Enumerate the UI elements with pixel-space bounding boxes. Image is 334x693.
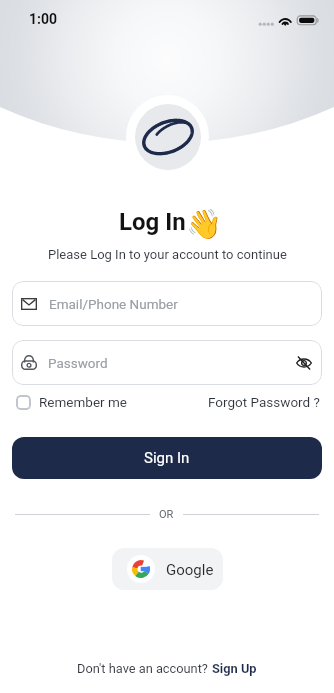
staticText: Please Log In to your account to continu… [48, 247, 287, 262]
button[interactable]: Remember me [16, 394, 127, 410]
staticText: 👋 [186, 207, 223, 241]
button[interactable]: Password [12, 340, 322, 385]
staticText: Don't have an account? [77, 661, 212, 676]
staticText: Log In [119, 208, 186, 236]
staticText: Password [48, 355, 108, 371]
staticText: Sign In [144, 449, 190, 467]
button[interactable]: Show password [296, 356, 312, 370]
staticText: 1:00 [29, 11, 58, 27]
button[interactable]: Forgot Password ? [208, 394, 320, 410]
staticText: OR [159, 508, 174, 521]
staticText: Sign Up [212, 661, 257, 676]
staticText: Google [166, 561, 214, 579]
button[interactable]: Sign In [12, 437, 322, 479]
staticText: Email/Phone Number [49, 296, 178, 312]
button[interactable]: Google [112, 548, 223, 590]
staticText: Remember me [39, 394, 127, 410]
button[interactable]: Email/Phone Number [12, 281, 322, 326]
button[interactable]: Don't have an account? [77, 661, 257, 676]
